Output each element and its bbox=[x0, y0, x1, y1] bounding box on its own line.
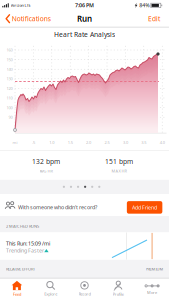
staticText: .5 bbox=[32, 140, 35, 145]
staticText: 2.5 bbox=[104, 140, 109, 145]
staticText: 2.0 bbox=[86, 140, 91, 145]
staticText: 2 MATCHED RUNS bbox=[6, 223, 39, 229]
staticText: Trending Faster bbox=[6, 247, 44, 254]
staticText: Explore bbox=[44, 291, 57, 297]
staticText: 151 bpm bbox=[105, 157, 133, 166]
staticText: 110 bbox=[6, 95, 12, 101]
staticText: Heart Rate Analysis bbox=[54, 30, 115, 39]
staticText: mi bbox=[12, 140, 17, 145]
button[interactable]: Edit bbox=[148, 14, 160, 23]
staticText: 120 bbox=[6, 86, 12, 91]
button[interactable]: Profile bbox=[102, 278, 135, 300]
staticText: Run bbox=[77, 13, 92, 24]
staticText: Notifications bbox=[12, 14, 51, 23]
button[interactable]: Record bbox=[68, 278, 101, 300]
staticText: Record bbox=[78, 291, 90, 297]
staticText: 3.0 bbox=[123, 140, 128, 145]
staticText: 1.0 bbox=[49, 140, 54, 145]
staticText: 90 bbox=[8, 114, 12, 120]
staticText: 100 bbox=[6, 105, 12, 110]
button[interactable]: More bbox=[136, 279, 169, 300]
staticText: 132 bpm bbox=[32, 157, 60, 166]
staticText: PREMIUM bbox=[145, 266, 163, 272]
staticText: More bbox=[147, 290, 157, 295]
button[interactable]: Feed bbox=[0, 278, 33, 300]
staticText: Profile bbox=[113, 292, 124, 297]
staticText: 3.5 bbox=[141, 140, 146, 145]
staticText: 160 bbox=[6, 47, 12, 53]
staticText: MAX HR bbox=[111, 168, 126, 174]
button[interactable]: Notifications bbox=[5, 14, 51, 23]
staticText: Feed bbox=[13, 292, 21, 297]
staticText: Verizon LTE bbox=[10, 3, 30, 8]
staticText: 1.5 bbox=[68, 140, 73, 145]
staticText: Add Friend bbox=[132, 204, 157, 211]
button[interactable]: This Run: 15:09 /mi bbox=[0, 232, 169, 260]
staticText: AVG HR bbox=[39, 168, 52, 174]
staticText: 150 bbox=[6, 57, 12, 62]
staticText: 130 bbox=[6, 76, 12, 81]
button[interactable]: Add Friend bbox=[127, 201, 162, 214]
staticText: RELATIVE EFFORT bbox=[6, 266, 35, 272]
staticText: 7:06 PM bbox=[75, 2, 94, 9]
staticText: 84% bbox=[139, 2, 149, 9]
staticText: Edit bbox=[148, 14, 160, 23]
staticText: With someone who didn't record? bbox=[18, 204, 97, 211]
staticText: 4.0 bbox=[160, 140, 165, 145]
staticText: This Run: 15:09 /mi bbox=[6, 240, 50, 247]
staticText: 140 bbox=[6, 66, 12, 72]
button[interactable]: Explore bbox=[34, 278, 67, 300]
